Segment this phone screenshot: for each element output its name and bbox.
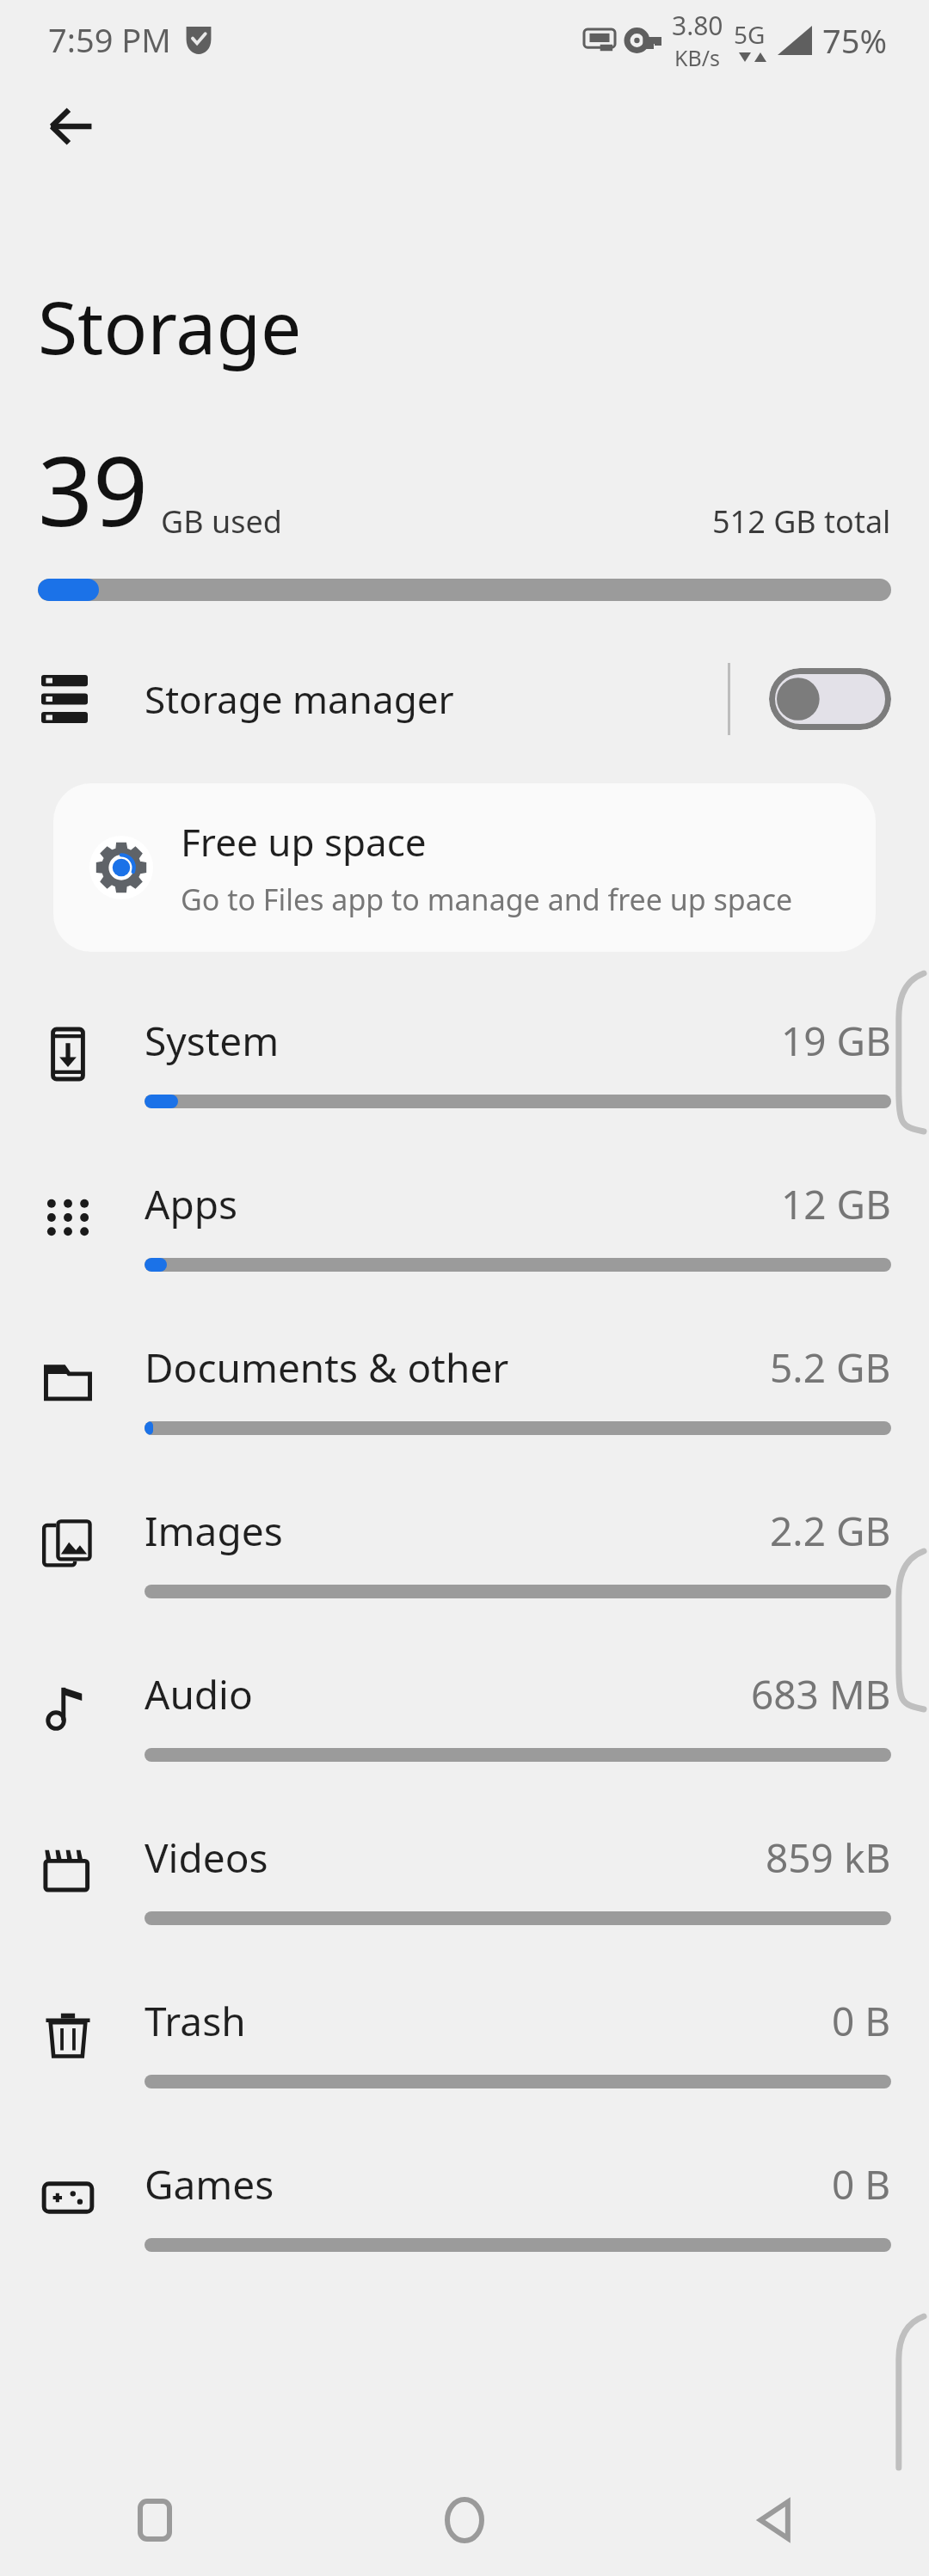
staticText: 683 MB xyxy=(751,1667,891,1721)
staticText: 19 GB xyxy=(781,1014,891,1068)
button[interactable]: Storage manager toggle xyxy=(769,668,891,730)
staticText: System xyxy=(145,1014,280,1068)
staticText: 7:59 PM xyxy=(48,17,171,62)
staticText: Free up space xyxy=(181,816,427,868)
staticText: 5G xyxy=(734,18,766,51)
staticText: Storage xyxy=(38,277,302,375)
staticText: 12 GB xyxy=(781,1177,891,1231)
button[interactable]: Audio xyxy=(0,1635,929,1798)
staticText: Go to Files app to manage and free up sp… xyxy=(181,880,793,919)
staticText: Videos xyxy=(145,1831,268,1885)
button[interactable]: Recent apps xyxy=(0,2464,310,2576)
button[interactable]: Back xyxy=(619,2464,929,2576)
staticText: Documents & other xyxy=(145,1340,509,1395)
staticText: Trash xyxy=(145,1994,246,2048)
button[interactable]: Games xyxy=(0,2125,929,2288)
button[interactable]: Free up space xyxy=(53,783,876,952)
staticText: 3.80 xyxy=(672,8,723,43)
button[interactable]: Apps xyxy=(0,1144,929,1308)
staticText: Images xyxy=(145,1504,283,1558)
button[interactable]: System xyxy=(0,981,929,1144)
staticText: 0 B xyxy=(832,2157,891,2211)
staticText: 75% xyxy=(822,18,888,63)
button[interactable]: Home xyxy=(310,2464,619,2576)
staticText: 39 xyxy=(38,423,149,555)
staticText: 512 GB total xyxy=(712,500,891,543)
staticText: Games xyxy=(145,2157,274,2211)
staticText: Audio xyxy=(145,1667,253,1721)
button[interactable]: Storage manager xyxy=(0,647,929,751)
staticText: 5.2 GB xyxy=(770,1340,891,1395)
button[interactable]: Videos xyxy=(0,1798,929,1961)
button[interactable]: Back xyxy=(33,89,108,164)
staticText: 859 kB xyxy=(766,1831,891,1885)
staticText: Storage manager xyxy=(145,673,454,725)
button[interactable]: Images xyxy=(0,1471,929,1635)
staticText: 0 B xyxy=(832,1994,891,2048)
staticText: KB/s xyxy=(674,43,721,72)
staticText: 2.2 GB xyxy=(770,1504,891,1558)
button[interactable]: Documents & other xyxy=(0,1308,929,1471)
staticText: GB used xyxy=(161,500,282,543)
button[interactable]: Trash xyxy=(0,1961,929,2125)
staticText: Apps xyxy=(145,1177,238,1231)
